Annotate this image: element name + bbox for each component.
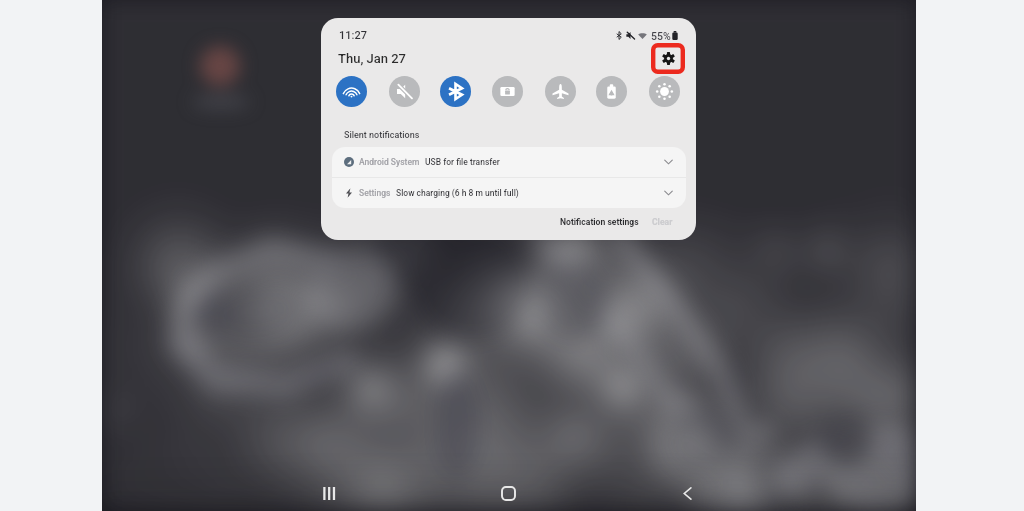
button[interactable]: Settings — [332, 178, 686, 208]
button[interactable]: Home — [494, 479, 522, 507]
button[interactable]: Android System — [332, 147, 686, 177]
button[interactable]: Settings — [651, 43, 685, 74]
button[interactable]: Recents — [315, 479, 343, 507]
staticText: Android System — [359, 157, 420, 167]
button[interactable]: Brightness — [649, 76, 680, 107]
button[interactable]: Bluetooth — [440, 76, 471, 107]
staticText: 55% — [651, 30, 671, 42]
button[interactable]: Power saving — [596, 76, 627, 107]
button[interactable]: Flight mode — [545, 76, 576, 107]
button[interactable]: Notification settings — [560, 217, 639, 227]
button[interactable]: Auto rotate — [492, 76, 523, 107]
staticText: Settings — [359, 188, 391, 198]
staticText: USB for file transfer — [425, 157, 500, 167]
button[interactable]: Sound off — [389, 76, 420, 107]
staticText: Silent notifications — [344, 130, 420, 141]
staticText: Slow charging (6 h 8 m until full) — [396, 188, 519, 198]
staticText: 11:27 — [339, 29, 367, 42]
button[interactable]: Clear — [652, 217, 673, 227]
button[interactable]: Wi-Fi — [336, 76, 367, 107]
button[interactable]: Back — [673, 479, 701, 507]
staticText: Thu, Jan 27 — [338, 51, 406, 66]
